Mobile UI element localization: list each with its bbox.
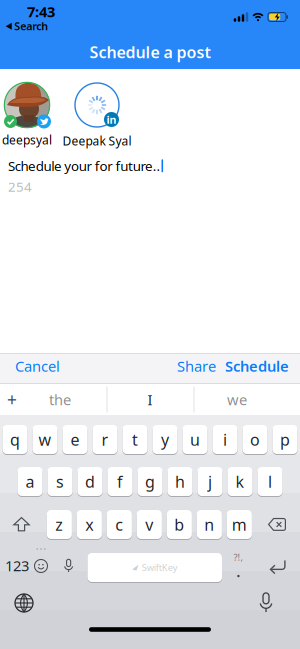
staticText: s	[56, 471, 64, 492]
staticText: Search	[14, 19, 48, 33]
staticText: r	[101, 429, 108, 450]
button[interactable]: d	[77, 466, 103, 496]
button[interactable]: Period	[233, 551, 243, 581]
button[interactable]: s	[47, 466, 73, 496]
button[interactable]: a	[17, 466, 43, 496]
staticText: +	[7, 388, 17, 411]
staticText: j	[208, 471, 212, 492]
staticText: 123	[5, 556, 29, 575]
button[interactable]: i	[212, 424, 238, 454]
button[interactable]: o	[242, 424, 268, 454]
button[interactable]: r	[92, 424, 118, 454]
staticText: Schedule a post	[89, 41, 210, 63]
staticText: ?!,	[233, 551, 243, 563]
staticText: p	[280, 429, 290, 450]
button[interactable]: l	[257, 466, 283, 496]
staticText: c	[115, 514, 123, 535]
staticText: a	[25, 471, 34, 492]
staticText: l	[268, 471, 272, 492]
button[interactable]: n	[197, 509, 222, 539]
staticText: q	[10, 429, 20, 450]
staticText: SwiftKey	[142, 561, 178, 574]
button[interactable]: v	[137, 509, 162, 539]
staticText: Schedule your for future..	[8, 157, 160, 175]
button[interactable]: m	[227, 509, 252, 539]
staticText: m	[232, 514, 247, 535]
staticText: d	[85, 471, 95, 492]
staticText: b	[174, 514, 184, 535]
button[interactable]: p	[272, 424, 298, 454]
button[interactable]: Schedule	[216, 356, 300, 376]
button[interactable]: Delete	[268, 518, 286, 531]
button[interactable]: z	[47, 509, 72, 539]
staticText: the	[49, 390, 71, 409]
staticText: f	[117, 471, 123, 492]
button[interactable]: Cancel	[0, 356, 60, 376]
staticText: x	[85, 514, 93, 535]
staticText: in	[106, 112, 116, 127]
staticText: t	[132, 429, 138, 450]
button[interactable]: u	[182, 424, 208, 454]
button[interactable]: Dictate	[259, 592, 272, 613]
staticText: w	[38, 429, 51, 450]
button[interactable]: the	[30, 384, 90, 415]
button[interactable]: q	[2, 424, 28, 454]
staticText: .	[236, 563, 240, 581]
button[interactable]: deepsyal	[2, 82, 52, 148]
staticText: z	[55, 514, 63, 535]
staticText: o	[250, 429, 260, 450]
button[interactable]: c	[107, 509, 132, 539]
staticText: Share	[177, 356, 216, 376]
button[interactable]: w	[32, 424, 58, 454]
staticText: I	[147, 390, 152, 409]
staticText: Schedule	[225, 356, 289, 376]
button[interactable]: y	[152, 424, 178, 454]
button[interactable]: h	[167, 466, 193, 496]
button[interactable]: t	[122, 424, 148, 454]
button[interactable]: Dictation	[64, 559, 73, 573]
button[interactable]: f	[107, 466, 133, 496]
staticText: n	[204, 514, 214, 535]
button[interactable]: k	[227, 466, 253, 496]
button[interactable]: Shift	[13, 517, 30, 532]
button[interactable]: we	[207, 384, 267, 415]
staticText: g	[145, 471, 155, 492]
button[interactable]: Switch keyboard	[14, 593, 34, 613]
staticText: e	[70, 429, 79, 450]
button[interactable]: +	[1, 384, 23, 415]
staticText: we	[227, 390, 247, 409]
staticText: 254	[8, 178, 32, 195]
button[interactable]: Share	[177, 356, 216, 376]
staticText: y	[161, 429, 169, 450]
button[interactable]: in	[69, 82, 125, 149]
button[interactable]: Numbers	[5, 556, 29, 575]
staticText: i	[223, 429, 227, 450]
button[interactable]: j	[197, 466, 223, 496]
staticText: deepsyal	[2, 132, 52, 148]
button[interactable]: Return	[268, 559, 287, 574]
staticText: 7:43	[27, 2, 55, 21]
button[interactable]: b	[167, 509, 192, 539]
staticText: h	[175, 471, 185, 492]
staticText: Cancel	[15, 356, 60, 376]
button[interactable]: Space	[87, 552, 222, 582]
button[interactable]: x	[77, 509, 102, 539]
staticText: Deepak Syal	[62, 133, 131, 149]
button[interactable]: g	[137, 466, 163, 496]
staticText: u	[190, 429, 200, 450]
button[interactable]: I	[120, 384, 180, 415]
button[interactable]: e	[62, 424, 88, 454]
button[interactable]: Emoji	[34, 559, 47, 572]
staticText: v	[145, 514, 153, 535]
staticText: k	[235, 471, 244, 492]
